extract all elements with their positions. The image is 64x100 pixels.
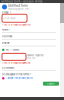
button[interactable]: Submit	[43, 82, 59, 86]
staticText: I accept the privacy policy	[5, 77, 32, 80]
staticText: This is a required question	[2, 23, 30, 26]
staticText: example@gmail.com	[8, 7, 29, 10]
staticText: Phone	[2, 42, 9, 45]
staticText: Name *	[2, 28, 10, 31]
staticText: Submit	[47, 82, 55, 85]
staticText: Untitled form	[8, 4, 28, 7]
staticText: Do you agree to the terms *	[2, 73, 31, 76]
staticText: Untitled form - Google Forms	[1, 0, 42, 3]
staticText: Address	[2, 35, 12, 38]
staticText: Pick one	[27, 57, 35, 59]
staticText: Your email	[3, 17, 16, 20]
staticText: This is a required question	[2, 61, 30, 64]
staticText: Answer required	[27, 54, 43, 57]
staticText: Comments	[2, 66, 14, 69]
staticText: Yes, I consent	[5, 48, 19, 51]
staticText: Email *	[2, 11, 11, 14]
